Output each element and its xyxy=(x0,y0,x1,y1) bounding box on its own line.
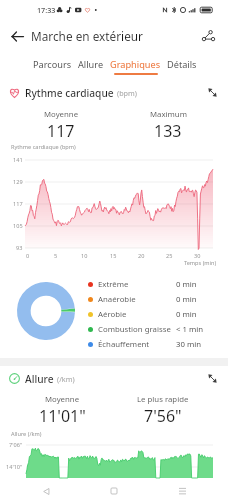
staticText: Parcours xyxy=(33,58,72,71)
staticText: (/km) xyxy=(57,374,75,384)
staticText: 0 min xyxy=(176,294,197,305)
staticText: 7'06" xyxy=(9,441,23,449)
button[interactable]: Allure xyxy=(78,52,104,75)
staticText: < 1 min xyxy=(176,324,204,335)
staticText: 11'01" xyxy=(39,405,86,427)
staticText: 25 xyxy=(166,252,173,260)
staticText: 15 xyxy=(110,252,117,260)
staticText: Allure xyxy=(78,58,104,71)
staticText: 129 xyxy=(13,178,23,186)
staticText: 14'10" xyxy=(6,463,23,471)
staticText: Extrême xyxy=(98,279,129,290)
button[interactable]: Expand chart xyxy=(204,84,221,101)
staticText: 117 xyxy=(47,120,75,142)
staticText: 5 xyxy=(54,252,58,260)
staticText: Maximum xyxy=(150,109,187,120)
staticText: 0 xyxy=(26,252,30,260)
staticText: 30 min xyxy=(176,339,202,350)
staticText: (bpm) xyxy=(117,88,137,98)
staticText: Graphiques xyxy=(110,58,161,71)
staticText: Rythme cardiaque (bpm) xyxy=(11,143,76,151)
staticText: Combustion graisse xyxy=(98,324,171,335)
staticText: Échauffement xyxy=(98,339,150,350)
button[interactable]: Détails xyxy=(167,52,197,75)
staticText: Rythme cardiaque xyxy=(25,86,114,100)
staticText: Allure (/km) xyxy=(11,430,42,438)
staticText: Temps (min) xyxy=(184,259,217,267)
button[interactable]: Recent apps xyxy=(172,481,192,501)
staticText: Détails xyxy=(167,58,197,71)
staticText: 133 xyxy=(154,120,182,142)
staticText: Moyenne xyxy=(44,109,79,120)
staticText: Moyenne xyxy=(45,394,80,405)
staticText: 30 xyxy=(194,252,201,260)
button[interactable]: Back xyxy=(6,25,28,47)
staticText: 0 min xyxy=(176,279,197,290)
staticText: 7'56" xyxy=(144,405,182,427)
staticText: 17:33 xyxy=(37,5,56,15)
staticText: Le plus rapide xyxy=(137,394,189,405)
staticText: 93 xyxy=(16,244,23,252)
staticText: 105 xyxy=(13,222,23,230)
button[interactable]: Back xyxy=(36,481,56,501)
staticText: 20 xyxy=(138,252,145,260)
staticText: 141 xyxy=(13,156,23,164)
staticText: 117 xyxy=(13,200,23,208)
button[interactable]: Share route xyxy=(197,25,219,47)
button[interactable]: Expand chart xyxy=(204,370,221,387)
staticText: Allure xyxy=(25,372,54,386)
staticText: 0 min xyxy=(176,309,197,320)
button[interactable]: Graphiques xyxy=(110,52,161,75)
button[interactable]: Home xyxy=(104,481,124,501)
button[interactable]: Parcours xyxy=(33,52,72,75)
staticText: 10 xyxy=(81,252,88,260)
staticText: Marche en extérieur xyxy=(31,28,143,44)
staticText: Anaérobie xyxy=(98,294,136,305)
staticText: Aérobie xyxy=(98,309,127,320)
